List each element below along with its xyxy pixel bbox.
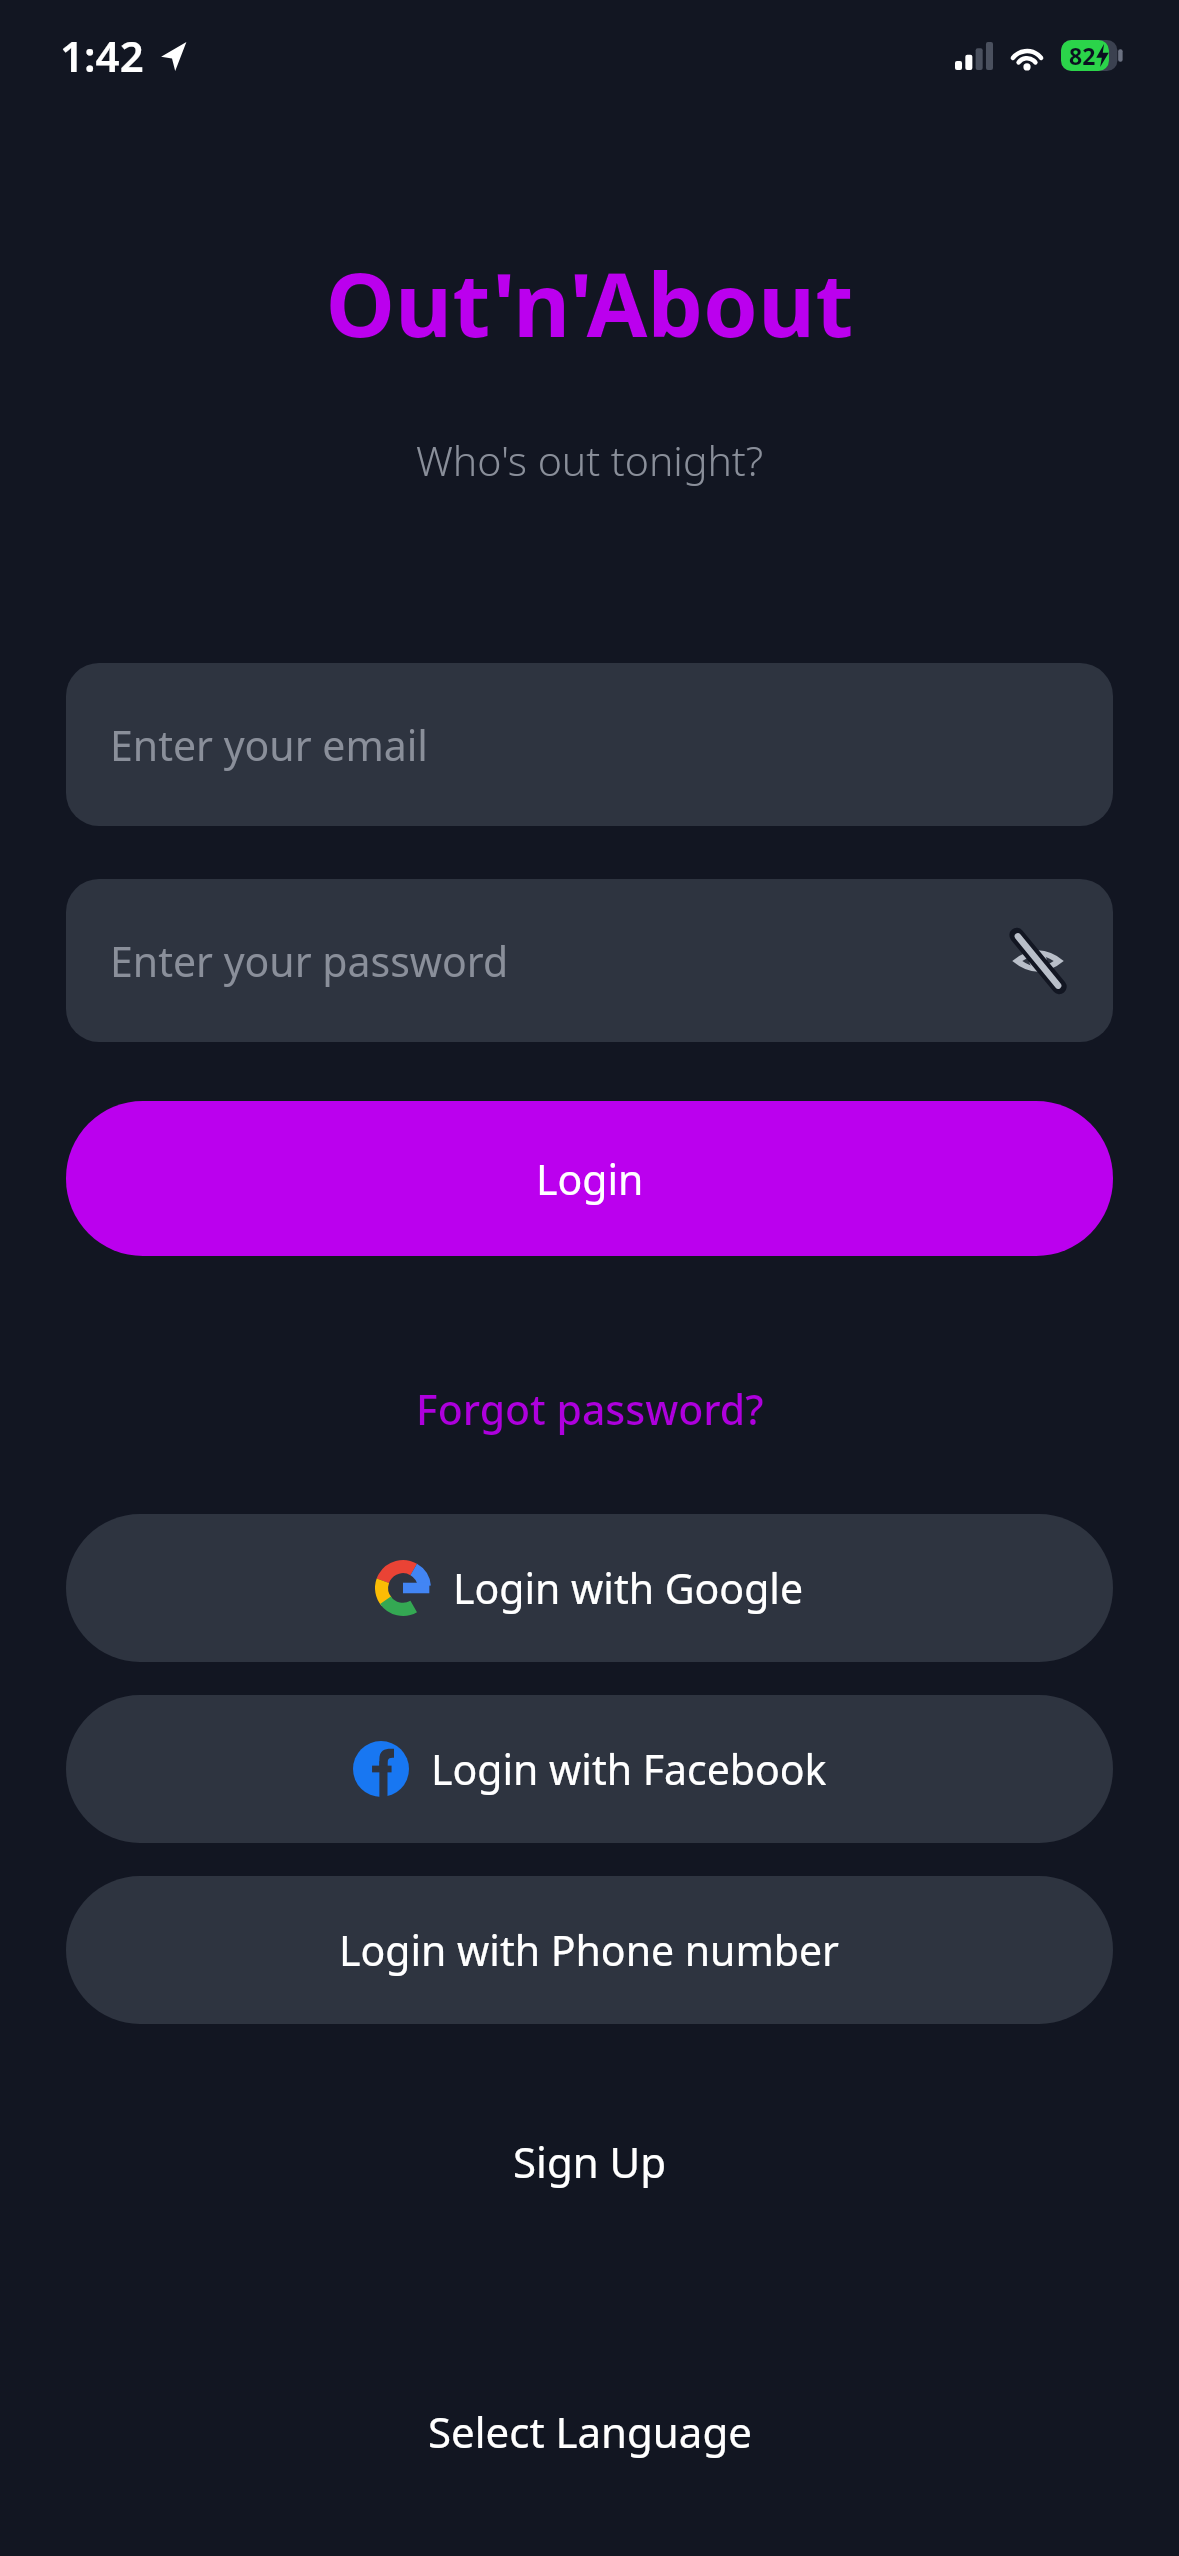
button[interactable]: Enter your password [66, 879, 1113, 1042]
staticText: 1:42 [60, 27, 144, 84]
button[interactable]: Show password [1001, 924, 1075, 998]
staticText: Login with Google [453, 1560, 804, 1616]
button[interactable]: Login [66, 1101, 1113, 1256]
button[interactable]: Sign Up [0, 2133, 1179, 2190]
staticText: Select Language [428, 2403, 752, 2460]
button[interactable]: Select Language [0, 2403, 1179, 2460]
staticText: Enter your password [110, 933, 509, 989]
button[interactable]: Login with Facebook [66, 1695, 1113, 1843]
staticText: Login [536, 1151, 644, 1207]
staticText: Who's out tonight? [0, 432, 1179, 488]
button[interactable]: Forgot password? [0, 1381, 1179, 1437]
staticText: Forgot password? [416, 1381, 764, 1437]
staticText: Out'n'About [0, 243, 1179, 363]
button[interactable]: Enter your email [66, 663, 1113, 826]
staticText: Login with Facebook [431, 1741, 827, 1797]
staticText: Sign Up [513, 2133, 667, 2190]
button[interactable]: Login with Google [66, 1514, 1113, 1662]
staticText: 82 [1069, 40, 1096, 71]
staticText: Enter your email [110, 717, 428, 773]
button[interactable]: Login with Phone number [66, 1876, 1113, 2024]
staticText: Login with Phone number [339, 1922, 840, 1978]
